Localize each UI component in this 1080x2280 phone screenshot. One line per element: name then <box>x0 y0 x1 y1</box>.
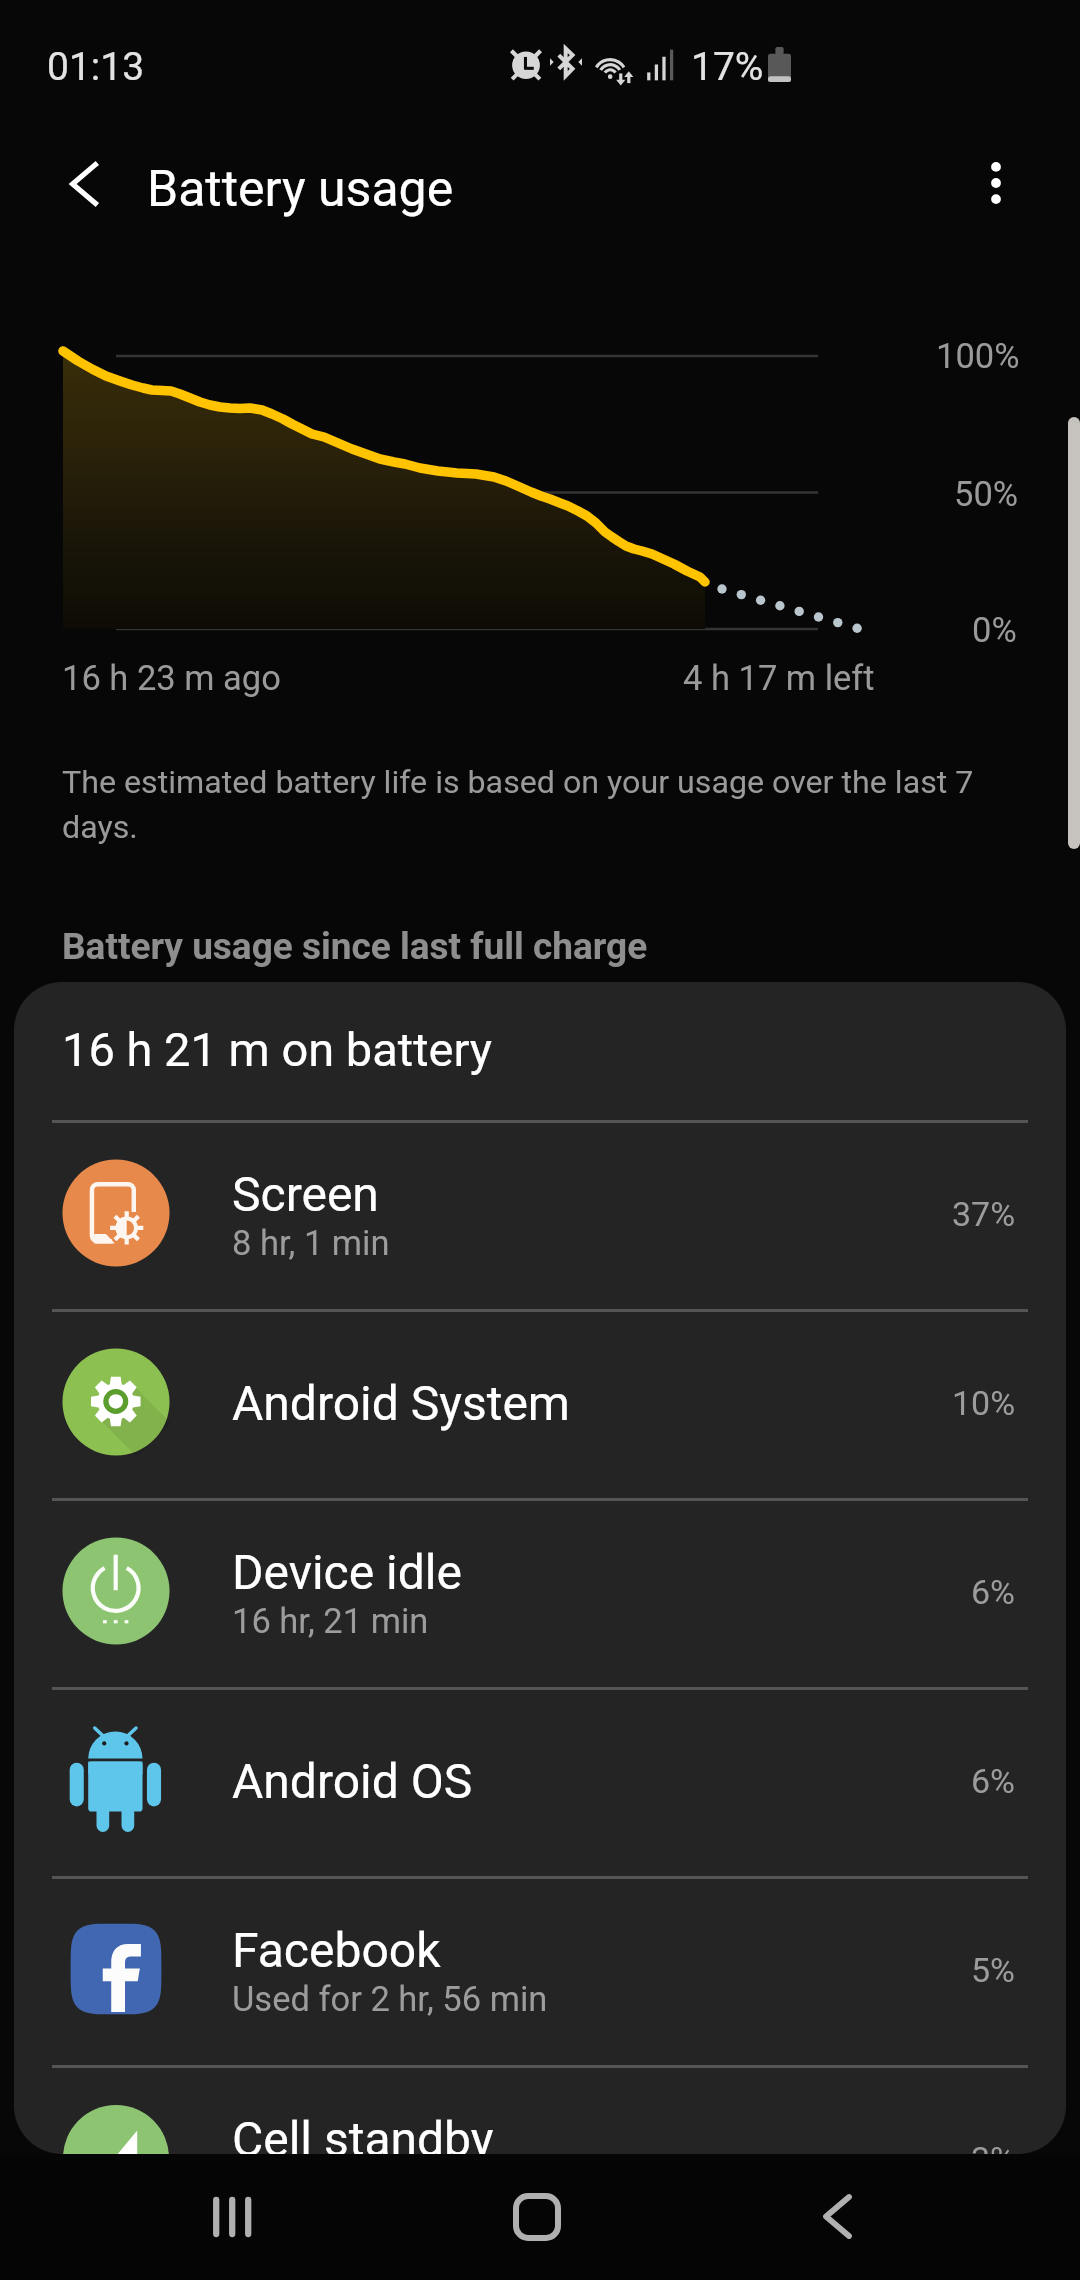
staticText: 5% <box>971 1950 1016 1990</box>
button[interactable]: Screen <box>14 1123 1066 1309</box>
staticText: 01:13 <box>47 44 145 90</box>
staticText: 37% <box>952 1194 1016 1234</box>
staticText: Android OS <box>232 1753 473 1809</box>
staticText: 3% <box>971 2139 1016 2154</box>
button[interactable]: Home <box>447 2154 627 2280</box>
staticText: 6% <box>971 1572 1016 1612</box>
staticText: The estimated battery life is based on y… <box>62 763 974 846</box>
staticText: 16 hr, 21 min <box>232 1601 429 1641</box>
staticText: Facebook <box>232 1922 441 1978</box>
button[interactable]: Android OS <box>14 1690 1066 1876</box>
button[interactable]: Recent apps <box>145 2154 325 2280</box>
staticText: 4 h 17 m left <box>683 658 875 698</box>
staticText: 16 h 23 m ago <box>62 658 281 698</box>
staticText: 100% <box>936 336 1020 376</box>
staticText: Screen <box>232 1166 379 1222</box>
button[interactable]: Android System <box>14 1312 1066 1498</box>
staticText: Device idle <box>232 1544 462 1600</box>
staticText: Battery usage <box>147 160 454 219</box>
staticText: Used for 2 hr, 56 min <box>232 1979 548 2019</box>
staticText: 17% <box>691 44 764 90</box>
button[interactable]: Device idle <box>14 1501 1066 1687</box>
staticText: Android System <box>232 1375 570 1431</box>
staticText: Cell standby <box>232 2111 494 2154</box>
button[interactable]: Cell standby <box>14 2068 1066 2154</box>
button[interactable]: Back <box>47 147 121 221</box>
staticText: 6% <box>971 1761 1016 1801</box>
staticText: 8 hr, 1 min <box>232 1223 390 1263</box>
staticText: 0% <box>972 610 1017 650</box>
staticText: Battery usage since last full charge <box>62 925 648 968</box>
staticText: 50% <box>954 474 1019 514</box>
button[interactable]: More options <box>955 142 1036 223</box>
staticText: 16 h 21 m on battery <box>62 1022 493 1077</box>
button[interactable]: Facebook <box>14 1879 1066 2065</box>
staticText: 10% <box>952 1383 1016 1423</box>
button[interactable]: Back <box>750 2154 930 2280</box>
